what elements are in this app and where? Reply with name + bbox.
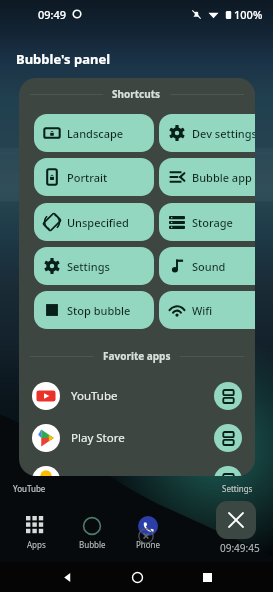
button[interactable]: YouTube: [19, 375, 255, 417]
button[interactable]: Storage: [159, 203, 255, 241]
staticText: Bubble's panel: [16, 50, 111, 68]
button[interactable]: Portrait: [34, 158, 154, 196]
button[interactable]: Home: [102, 562, 172, 592]
button[interactable]: Bubble app: [159, 158, 255, 196]
staticText: Phone: [136, 539, 161, 550]
staticText: Dev settings: [192, 126, 255, 141]
staticText: Wifi: [192, 303, 213, 318]
staticText: Stop bubble: [67, 303, 131, 318]
staticText: Unspecified: [67, 215, 129, 230]
button[interactable]: Dismiss bubble: [138, 528, 154, 544]
button[interactable]: Recents: [172, 562, 242, 592]
button[interactable]: Phone: [126, 516, 170, 550]
button[interactable]: Stop bubble: [34, 291, 154, 329]
staticText: 09:49: [38, 7, 67, 22]
button[interactable]: Wifi: [159, 291, 255, 329]
button[interactable]: Landscape: [34, 114, 154, 152]
staticText: Landscape: [67, 126, 124, 141]
button[interactable]: Split screen: [214, 382, 242, 410]
button[interactable]: Sound: [159, 247, 255, 285]
staticText: 09:49:45: [220, 541, 260, 555]
staticText: Sound: [192, 259, 226, 274]
button[interactable]: Bubble: [70, 516, 114, 550]
button[interactable]: Split screen: [214, 424, 242, 452]
button[interactable]: Close: [216, 501, 256, 539]
staticText: YouTube: [13, 483, 46, 494]
button[interactable]: Unspecified: [34, 203, 154, 241]
staticText: Bubble: [79, 539, 106, 550]
button[interactable]: Settings: [34, 247, 154, 285]
staticText: Apps: [27, 539, 46, 550]
staticText: Portrait: [67, 170, 108, 185]
button[interactable]: Photos: [19, 459, 255, 476]
staticText: Settings: [222, 483, 253, 494]
staticText: Bubble app: [192, 170, 252, 185]
button[interactable]: Dev settings: [159, 114, 255, 152]
button[interactable]: Back: [32, 562, 102, 592]
staticText: Play Store: [71, 430, 125, 446]
staticText: Favorite apps: [103, 349, 171, 363]
staticText: 100%: [234, 7, 263, 22]
button[interactable]: Split screen: [214, 466, 242, 476]
button[interactable]: Apps: [14, 516, 58, 550]
staticText: Shortcuts: [112, 87, 161, 101]
button[interactable]: Play Store: [19, 417, 255, 459]
staticText: Settings: [67, 259, 110, 274]
staticText: YouTube: [71, 388, 118, 404]
staticText: Storage: [192, 215, 233, 230]
